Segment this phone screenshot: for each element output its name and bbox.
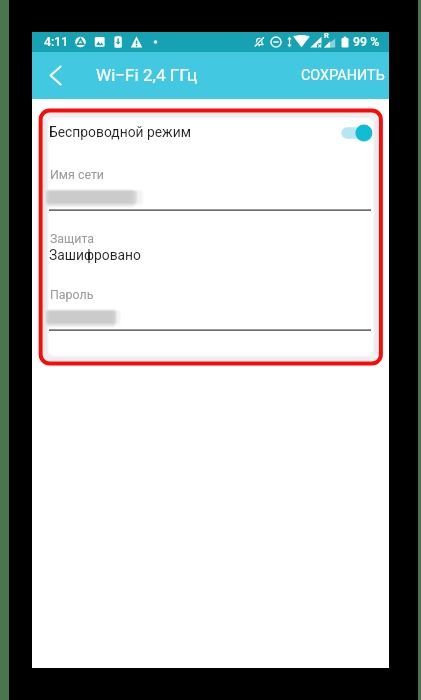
button[interactable]: Беспроводной режим [32, 99, 389, 147]
staticText: Зашифровано [49, 247, 141, 263]
button[interactable]: СОХРАНИТЬ [288, 56, 398, 95]
button[interactable]: Back [38, 57, 75, 94]
staticText: Имя сети [50, 167, 105, 182]
staticText: Защита [50, 231, 95, 246]
staticText: R [324, 31, 329, 40]
staticText: Пароль [50, 287, 94, 302]
staticText: Беспроводной режим [49, 124, 191, 140]
staticText: 99 % [353, 34, 380, 49]
staticText: Wi−Fi 2,4 ГГц [96, 65, 198, 85]
staticText: СОХРАНИТЬ [301, 67, 385, 84]
staticText: 4:11 [44, 34, 69, 49]
